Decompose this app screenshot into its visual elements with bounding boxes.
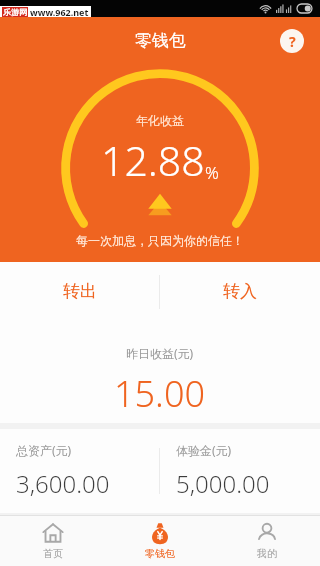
button[interactable]: 总资产(元) xyxy=(0,429,159,513)
staticText: 昨日收益(元) xyxy=(126,345,194,361)
staticText: 总资产(元) xyxy=(16,442,72,458)
staticText: 15.00 xyxy=(114,369,206,418)
staticText: 乐游网 xyxy=(3,7,27,17)
staticText: 5,000.00 xyxy=(176,467,270,500)
staticText: 3,600.00 xyxy=(16,467,110,500)
button[interactable]: 转入 xyxy=(160,262,320,321)
button[interactable]: 零钱包 xyxy=(106,516,213,566)
staticText: 首页 xyxy=(43,547,63,560)
button[interactable]: Help xyxy=(280,29,304,53)
button[interactable]: 昨日收益(元) xyxy=(0,321,320,423)
staticText: % xyxy=(205,161,219,184)
button[interactable]: 首页 xyxy=(0,516,106,566)
staticText: 年化收益 xyxy=(136,113,184,128)
staticText: 零钱包 xyxy=(135,30,186,51)
staticText: 12.88 xyxy=(101,132,205,188)
staticText: ? xyxy=(289,32,296,51)
staticText: www.962.net xyxy=(30,6,89,18)
staticText: 我的 xyxy=(257,547,277,560)
staticText: 体验金(元) xyxy=(176,442,232,458)
staticText: 转出 xyxy=(63,281,97,302)
staticText: 转入 xyxy=(223,281,257,302)
button[interactable]: 体验金(元) xyxy=(160,429,320,513)
staticText: 零钱包 xyxy=(145,547,175,560)
button[interactable]: 转出 xyxy=(0,262,159,321)
staticText: 每一次加息，只因为你的信任！ xyxy=(76,233,244,248)
button[interactable]: 我的 xyxy=(213,516,320,566)
